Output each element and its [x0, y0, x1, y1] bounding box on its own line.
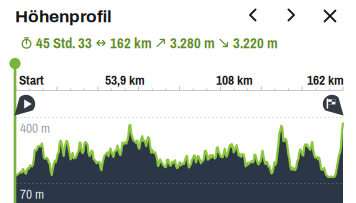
button[interactable]: Next: [278, 2, 304, 28]
staticText: 70 m: [20, 185, 44, 203]
staticText: 400 m: [20, 119, 50, 137]
staticText: 162 km: [307, 71, 344, 89]
staticText: Start: [19, 71, 44, 89]
staticText: 162 km: [110, 33, 152, 53]
staticText: Höhenprofil: [15, 7, 112, 26]
button[interactable]: Previous: [240, 2, 266, 28]
staticText: 3.280 m: [170, 33, 215, 53]
staticText: 45 Std. 33: [36, 33, 92, 53]
staticText: 53,9 km: [105, 71, 145, 89]
staticText: 3.220 m: [233, 33, 278, 53]
button[interactable]: Close: [317, 3, 343, 29]
staticText: 108 km: [216, 71, 253, 89]
